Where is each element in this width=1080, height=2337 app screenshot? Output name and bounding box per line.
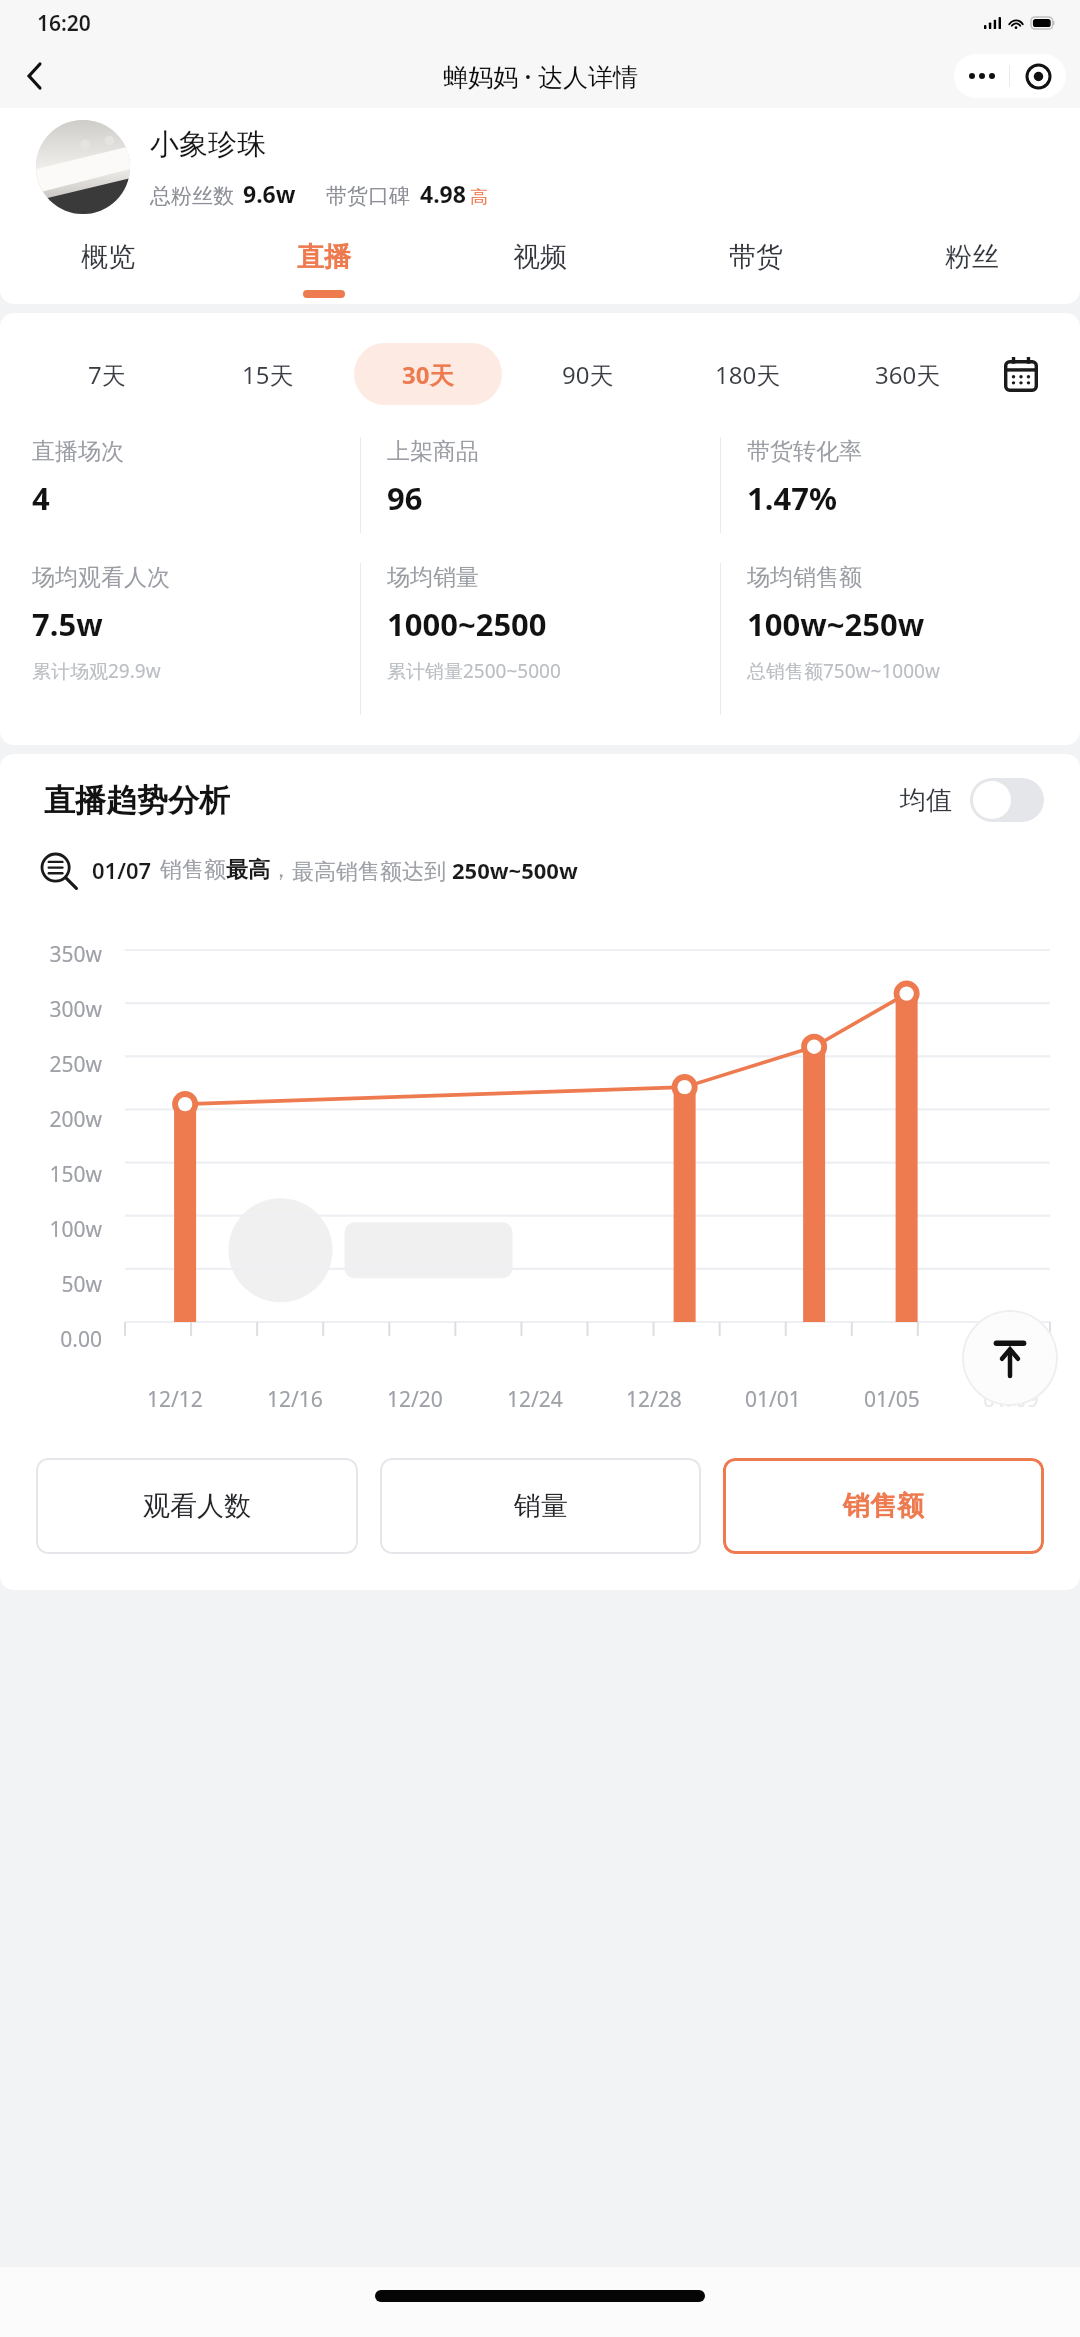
staticText: 9.6w <box>243 178 296 209</box>
staticText: 250w~500w <box>452 855 578 885</box>
staticText: 12/12 <box>147 1385 203 1414</box>
staticText: 最高 <box>226 856 270 884</box>
staticText: 15天 <box>242 358 294 391</box>
staticText: 蝉妈妈 · 达人详情 <box>443 59 638 93</box>
button[interactable]: 均值 <box>900 778 1044 822</box>
button[interactable]: 7天 <box>32 343 181 405</box>
staticText: 观看人数 <box>143 1489 251 1523</box>
button[interactable]: Scroll to top <box>962 1310 1058 1406</box>
staticText: 直播 <box>297 240 351 274</box>
staticText: 概览 <box>81 240 135 274</box>
staticText: 01/05 <box>864 1385 920 1414</box>
staticText: 12/16 <box>267 1385 323 1414</box>
button[interactable]: 带货 <box>648 240 864 304</box>
staticText: 均值 <box>900 784 952 817</box>
staticText: 总销售额750w~1000w <box>747 658 940 684</box>
staticText: 96 <box>387 477 423 519</box>
staticText: 直播场次 <box>32 437 124 466</box>
staticText: 4.98 <box>420 178 466 209</box>
staticText: 7.5w <box>32 603 103 645</box>
staticText: 250w <box>49 1050 102 1079</box>
staticText: 30天 <box>402 358 454 391</box>
staticText: 粉丝 <box>945 240 999 274</box>
button[interactable]: 360天 <box>834 343 982 405</box>
staticText: 高 <box>470 186 488 209</box>
button[interactable]: 90天 <box>514 343 662 405</box>
button[interactable]: 场均销售额 <box>721 563 1080 715</box>
staticText: 1.47% <box>747 477 837 519</box>
staticText: 01/01 <box>745 1385 801 1414</box>
button[interactable]: 视频 <box>432 240 648 304</box>
staticText: 350w <box>49 940 102 969</box>
staticText: 180天 <box>715 358 781 391</box>
button[interactable]: 销售额 <box>723 1458 1044 1554</box>
staticText: 01/07 <box>92 855 152 885</box>
staticText: 累计场观29.9w <box>32 658 161 684</box>
button[interactable]: 销量 <box>380 1458 701 1554</box>
staticText: 200w <box>49 1105 102 1134</box>
staticText: 场均销量 <box>387 563 479 592</box>
staticText: 带货口碑 <box>326 183 410 209</box>
button[interactable]: 场均观看人次 <box>0 563 360 715</box>
button[interactable]: 观看人数 <box>36 1458 358 1554</box>
staticText: 12/28 <box>626 1385 682 1414</box>
button[interactable]: Target <box>1010 54 1066 98</box>
button[interactable]: 直播场次 <box>0 437 360 533</box>
button[interactable]: 粉丝 <box>864 240 1080 304</box>
button[interactable]: 180天 <box>674 343 822 405</box>
staticText: 90天 <box>562 358 614 391</box>
staticText: 视频 <box>513 240 567 274</box>
staticText: 100w <box>49 1215 102 1244</box>
staticText: 场均销售额 <box>747 563 862 592</box>
staticText: 16:20 <box>37 9 91 38</box>
staticText: 上架商品 <box>387 437 479 466</box>
button[interactable]: Back <box>10 52 58 100</box>
button[interactable]: 直播 <box>216 240 432 304</box>
staticText: 12/20 <box>387 1385 443 1414</box>
staticText: 直播趋势分析 <box>44 781 230 820</box>
staticText: 4 <box>32 477 50 519</box>
staticText: 1000~2500 <box>387 603 547 645</box>
button[interactable]: 15天 <box>193 343 342 405</box>
staticText: 总粉丝数 <box>150 183 234 209</box>
staticText: 12/24 <box>507 1385 563 1414</box>
staticText: 销售额 <box>843 1489 924 1523</box>
staticText: 50w <box>61 1270 102 1299</box>
staticText: 累计销量2500~5000 <box>387 658 561 684</box>
staticText: 01/09 <box>983 1385 1039 1414</box>
button[interactable]: 上架商品 <box>361 437 720 533</box>
button[interactable]: Calendar <box>988 343 1054 405</box>
button[interactable]: 概览 <box>0 240 216 304</box>
button[interactable]: 小象珍珠 <box>36 120 1056 214</box>
staticText: 360天 <box>875 358 941 391</box>
button[interactable]: More <box>954 54 1009 98</box>
staticText: 7天 <box>88 358 126 391</box>
staticText: 300w <box>49 995 102 1024</box>
staticText: 最高销售额达到 <box>292 855 452 885</box>
staticText: 小象珍珠 <box>150 126 266 163</box>
button[interactable]: 场均销量 <box>361 563 720 715</box>
staticText: 销量 <box>514 1489 568 1523</box>
staticText: 带货 <box>729 240 783 274</box>
button[interactable]: 30天 <box>354 343 502 405</box>
staticText: 150w <box>49 1160 102 1189</box>
button[interactable]: 带货转化率 <box>721 437 1080 533</box>
staticText: 100w~250w <box>747 603 925 645</box>
staticText: 0.00 <box>60 1325 102 1354</box>
staticText: 场均观看人次 <box>32 563 170 592</box>
staticText: 销售额 <box>160 856 226 884</box>
staticText: 带货转化率 <box>747 437 862 466</box>
staticText: ， <box>270 856 292 884</box>
